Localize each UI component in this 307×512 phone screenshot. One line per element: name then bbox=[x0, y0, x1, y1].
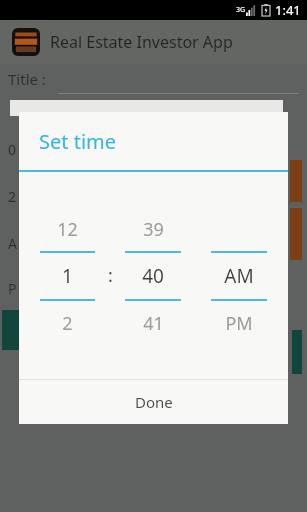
staticText: 1:41 bbox=[275, 1, 301, 19]
staticText: AM bbox=[224, 263, 254, 289]
staticText: P bbox=[8, 279, 17, 298]
staticText: Done bbox=[135, 392, 173, 412]
staticText: 1 bbox=[62, 263, 73, 289]
staticText: 2 bbox=[62, 311, 73, 336]
button[interactable]: AM bbox=[204, 253, 274, 299]
staticText: A bbox=[8, 234, 17, 253]
button[interactable]: Done bbox=[19, 380, 288, 424]
button[interactable]: Decrement bbox=[118, 301, 188, 345]
staticText: Real Estate Investor App bbox=[50, 31, 233, 53]
button[interactable]: Increment bbox=[33, 207, 102, 251]
staticText: 40 bbox=[142, 263, 164, 289]
staticText: 3G bbox=[236, 5, 246, 15]
button[interactable]: Decrement bbox=[33, 301, 102, 345]
staticText: : bbox=[108, 263, 113, 288]
staticText: Set time bbox=[39, 128, 117, 155]
staticText: 12 bbox=[57, 217, 78, 242]
button[interactable]: 40 bbox=[118, 253, 188, 299]
staticText: 2 bbox=[8, 187, 17, 206]
staticText: 41 bbox=[143, 311, 164, 336]
button[interactable]: 1 bbox=[33, 253, 102, 299]
staticText: Title : bbox=[8, 69, 46, 89]
button[interactable]: Increment bbox=[118, 207, 188, 251]
staticText: 39 bbox=[143, 217, 164, 242]
staticText: 0 bbox=[8, 140, 17, 159]
staticText: PM bbox=[225, 311, 253, 336]
button[interactable]: Decrement bbox=[204, 301, 274, 345]
